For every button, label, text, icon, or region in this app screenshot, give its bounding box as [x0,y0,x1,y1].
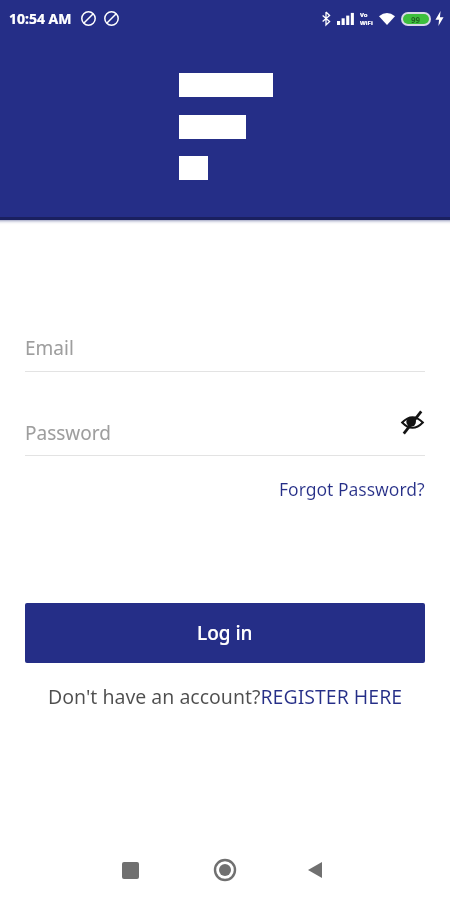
button[interactable]: Forgot Password? [279,477,425,501]
staticText: Email [25,335,74,361]
staticText: WiFi [360,19,373,27]
button[interactable] [205,850,245,890]
staticText: 99 [411,14,421,24]
button[interactable] [295,850,335,890]
button[interactable] [401,411,424,434]
button[interactable]: Log in [25,603,425,663]
button[interactable] [110,850,150,890]
staticText: Password [25,420,111,446]
staticText: 10:54 AM [9,9,72,28]
staticText: Vo [360,11,368,19]
staticText: Log in [197,620,253,646]
button[interactable]: Password [25,420,425,456]
button[interactable]: Don't have an account?REGISTER HERE [48,683,403,710]
button[interactable]: Email [25,335,425,372]
